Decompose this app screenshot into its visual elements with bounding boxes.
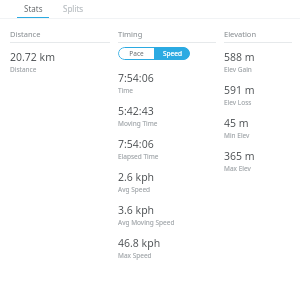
staticText: Splits [63,3,84,14]
staticText: Max Speed [118,251,152,260]
staticText: 5:42:43 [118,104,154,118]
button[interactable]: Splits [53,0,93,19]
button[interactable]: Stats [13,0,53,19]
staticText: 365 m [224,149,255,163]
staticText: 3.6 kph [118,203,155,217]
staticText: Avg Moving Speed [118,218,175,227]
staticText: 7:54:06 [118,137,154,151]
staticText: Time [118,86,134,95]
staticText: Elevation [224,29,257,39]
staticText: 45 m [224,116,249,130]
staticText: 588 m [224,50,255,64]
staticText: Avg Speed [118,185,151,194]
staticText: 20.72 km [10,50,55,64]
staticText: Stats [24,3,43,14]
staticText: Elapsed Time [118,152,159,161]
button[interactable]: Pace [118,47,154,60]
staticText: Timing [118,29,143,39]
staticText: Distance [10,29,41,39]
staticText: Elev Loss [224,98,252,107]
staticText: 7:54:06 [118,71,154,85]
staticText: 46.8 kph [118,236,161,250]
staticText: Min Elev [224,131,250,140]
staticText: Max Elev [224,164,251,173]
button[interactable]: Speed [154,47,190,60]
staticText: 591 m [224,83,255,97]
staticText: Elev Gain [224,65,252,74]
staticText: Moving Time [118,119,158,128]
staticText: Distance [10,65,37,74]
staticText: Pace [129,49,144,58]
staticText: 2.6 kph [118,170,155,184]
staticText: Speed [163,49,182,58]
